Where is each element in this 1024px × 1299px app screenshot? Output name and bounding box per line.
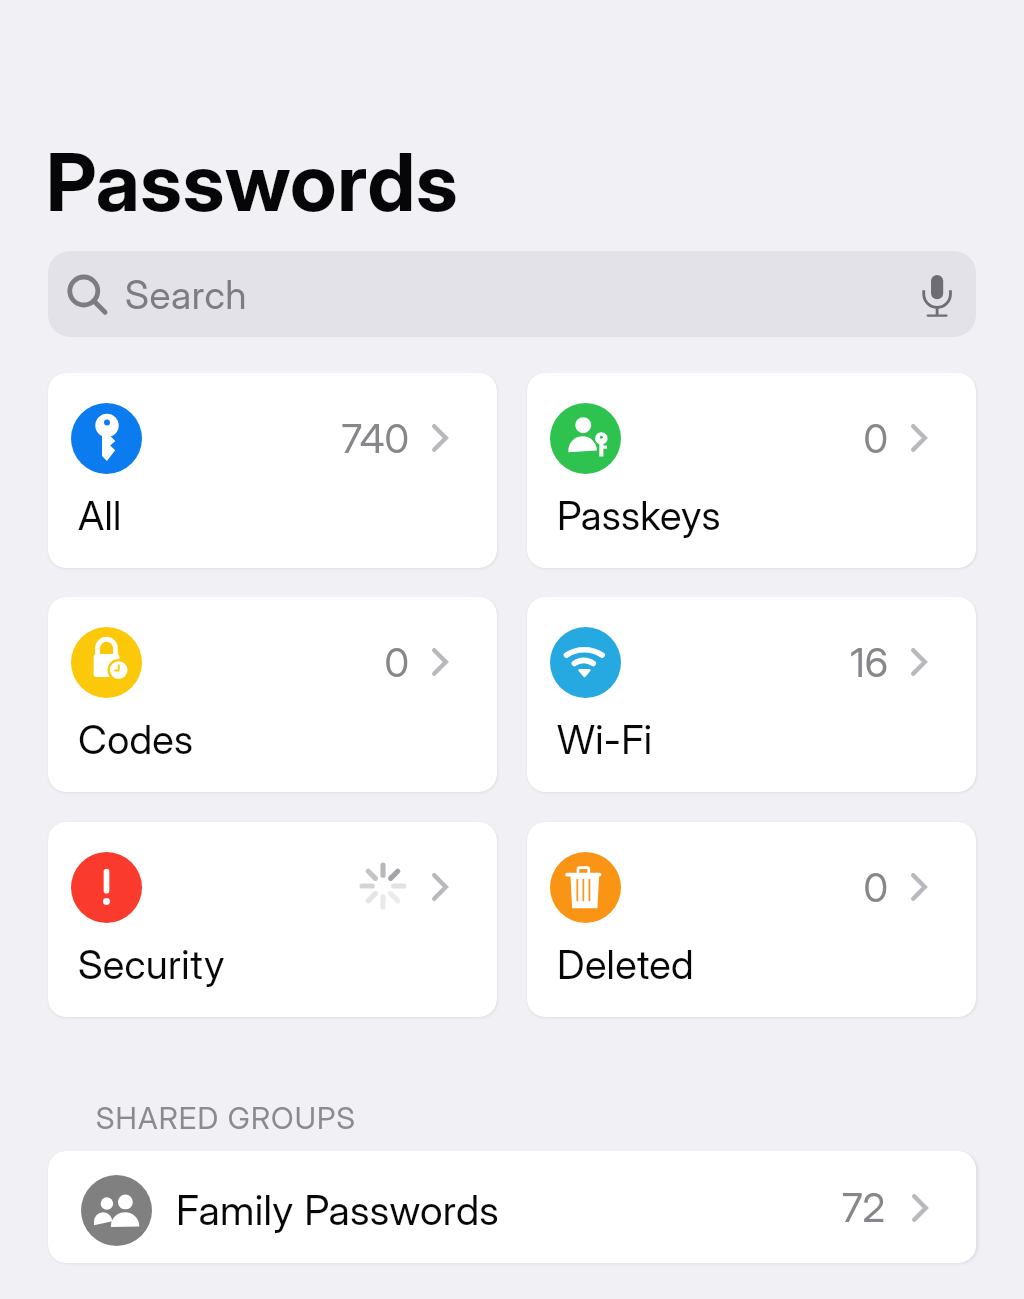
staticText: 16: [748, 638, 888, 686]
staticText: 72: [745, 1183, 885, 1231]
staticText: 0: [748, 863, 888, 911]
staticText: Codes: [78, 715, 194, 763]
staticText: Wi-Fi: [557, 715, 653, 763]
staticText: Passkeys: [557, 491, 721, 539]
staticText: 740: [269, 414, 409, 462]
button[interactable]: 16: [527, 597, 976, 792]
button[interactable]: 0: [48, 597, 497, 792]
staticText: 0: [748, 414, 888, 462]
button[interactable]: 740: [48, 373, 497, 568]
button[interactable]: 0: [527, 373, 976, 568]
button[interactable]: Search: [48, 251, 976, 337]
staticText: SHARED GROUPS: [96, 1100, 356, 1136]
staticText: Search: [125, 271, 248, 318]
staticText: Passwords: [46, 133, 459, 230]
button[interactable]: Security: [48, 822, 497, 1017]
button[interactable]: Voice search: [911, 269, 963, 321]
button[interactable]: 0: [527, 822, 976, 1017]
staticText: All: [78, 491, 122, 539]
staticText: Deleted: [557, 940, 694, 988]
staticText: Family Passwords: [176, 1185, 500, 1235]
staticText: 0: [269, 638, 409, 686]
staticText: Security: [78, 940, 225, 988]
button[interactable]: Family Passwords: [48, 1151, 976, 1263]
